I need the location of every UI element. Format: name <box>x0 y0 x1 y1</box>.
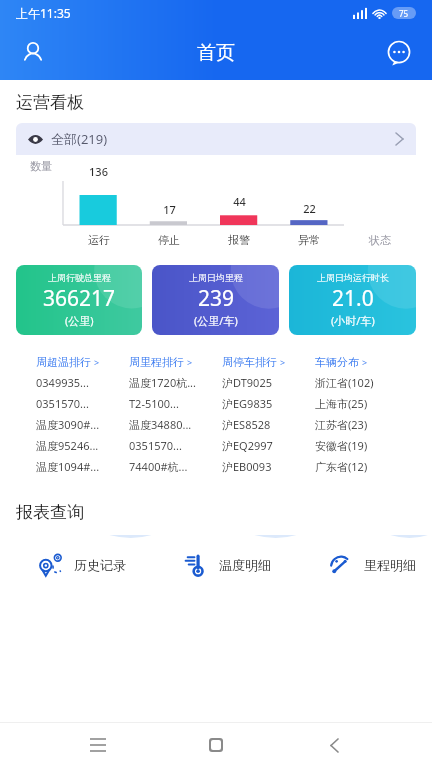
staticText: 上周日均里程 <box>189 272 243 283</box>
button[interactable]: Home <box>196 725 236 765</box>
staticText: 0351570... <box>36 396 89 411</box>
staticText: 历史记录 <box>74 557 126 573</box>
button[interactable]: Messages <box>382 36 416 70</box>
button[interactable]: 周里程排行 <box>129 355 193 369</box>
staticText: 沪EQ2997 <box>222 438 273 453</box>
staticText: 44 <box>233 194 246 209</box>
button[interactable]: 上周行驶总里程 <box>16 265 142 335</box>
staticText: > <box>187 356 193 368</box>
staticText: 沪EB0093 <box>222 459 272 474</box>
button[interactable]: 全部(219) <box>16 123 416 155</box>
staticText: 239 <box>198 284 235 313</box>
staticText: > <box>280 356 286 368</box>
staticText: 停止 <box>158 233 180 247</box>
staticText: 21.0 <box>332 284 374 313</box>
staticText: 车辆分布 <box>315 355 359 369</box>
button[interactable]: 里程明细 <box>314 535 432 595</box>
staticText: 报警 <box>228 233 250 247</box>
staticText: 首页 <box>197 41 235 65</box>
staticText: 74400#杭... <box>129 459 188 474</box>
staticText: 温度明细 <box>219 557 271 573</box>
staticText: 沪ES8528 <box>222 417 271 432</box>
staticText: 数量 <box>30 159 52 173</box>
staticText: (小时/车) <box>331 313 375 328</box>
staticText: 温度95246... <box>36 438 99 453</box>
staticText: (公里) <box>65 313 94 328</box>
button[interactable]: Profile <box>16 36 50 70</box>
staticText: > <box>362 356 368 368</box>
staticText: 温度34880... <box>129 417 192 432</box>
staticText: 366217 <box>43 284 116 313</box>
staticText: 沪EG9835 <box>222 396 273 411</box>
staticText: > <box>94 356 100 368</box>
staticText: 浙江省(102) <box>315 375 374 390</box>
staticText: 0349935... <box>36 375 89 390</box>
button[interactable]: 温度明细 <box>169 535 301 595</box>
staticText: 温度1094#... <box>36 459 100 474</box>
staticText: 周里程排行 <box>129 355 184 369</box>
staticText: 江苏省(23) <box>315 417 368 432</box>
staticText: 里程明细 <box>364 557 416 573</box>
staticText: 温度1720杭... <box>129 375 197 390</box>
button[interactable]: 周超温排行 <box>36 355 100 369</box>
staticText: 上周行驶总里程 <box>48 272 111 283</box>
staticText: 136 <box>89 164 108 179</box>
staticText: 上周日均运行时长 <box>317 272 389 283</box>
staticText: 上午11:35 <box>16 5 71 21</box>
staticText: 报表查询 <box>16 502 84 523</box>
button[interactable]: 上周日均运行时长 <box>289 265 416 335</box>
staticText: 广东省(12) <box>315 459 368 474</box>
button[interactable]: 周停车排行 <box>222 355 286 369</box>
staticText: T2-5100... <box>129 396 179 411</box>
staticText: 周停车排行 <box>222 355 277 369</box>
staticText: 上海市(25) <box>315 396 368 411</box>
staticText: 安徽省(19) <box>315 438 368 453</box>
staticText: 周超温排行 <box>36 355 91 369</box>
staticText: 运行 <box>88 233 110 247</box>
staticText: 17 <box>163 202 176 217</box>
staticText: 75 <box>399 8 409 19</box>
staticText: 运营看板 <box>16 92 84 113</box>
button[interactable]: 历史记录 <box>24 535 156 595</box>
button[interactable]: Recent apps <box>78 725 118 765</box>
button[interactable]: 上周日均里程 <box>152 265 279 335</box>
staticText: 温度3090#... <box>36 417 100 432</box>
staticText: 异常 <box>298 233 320 247</box>
staticText: 状态 <box>369 233 391 247</box>
button[interactable]: Back <box>314 725 354 765</box>
staticText: (公里/车) <box>194 313 238 328</box>
staticText: 全部(219) <box>51 130 108 148</box>
button[interactable]: 车辆分布 <box>315 355 368 369</box>
staticText: 0351570... <box>129 438 182 453</box>
staticText: 沪DT9025 <box>222 375 272 390</box>
staticText: 22 <box>303 201 316 216</box>
